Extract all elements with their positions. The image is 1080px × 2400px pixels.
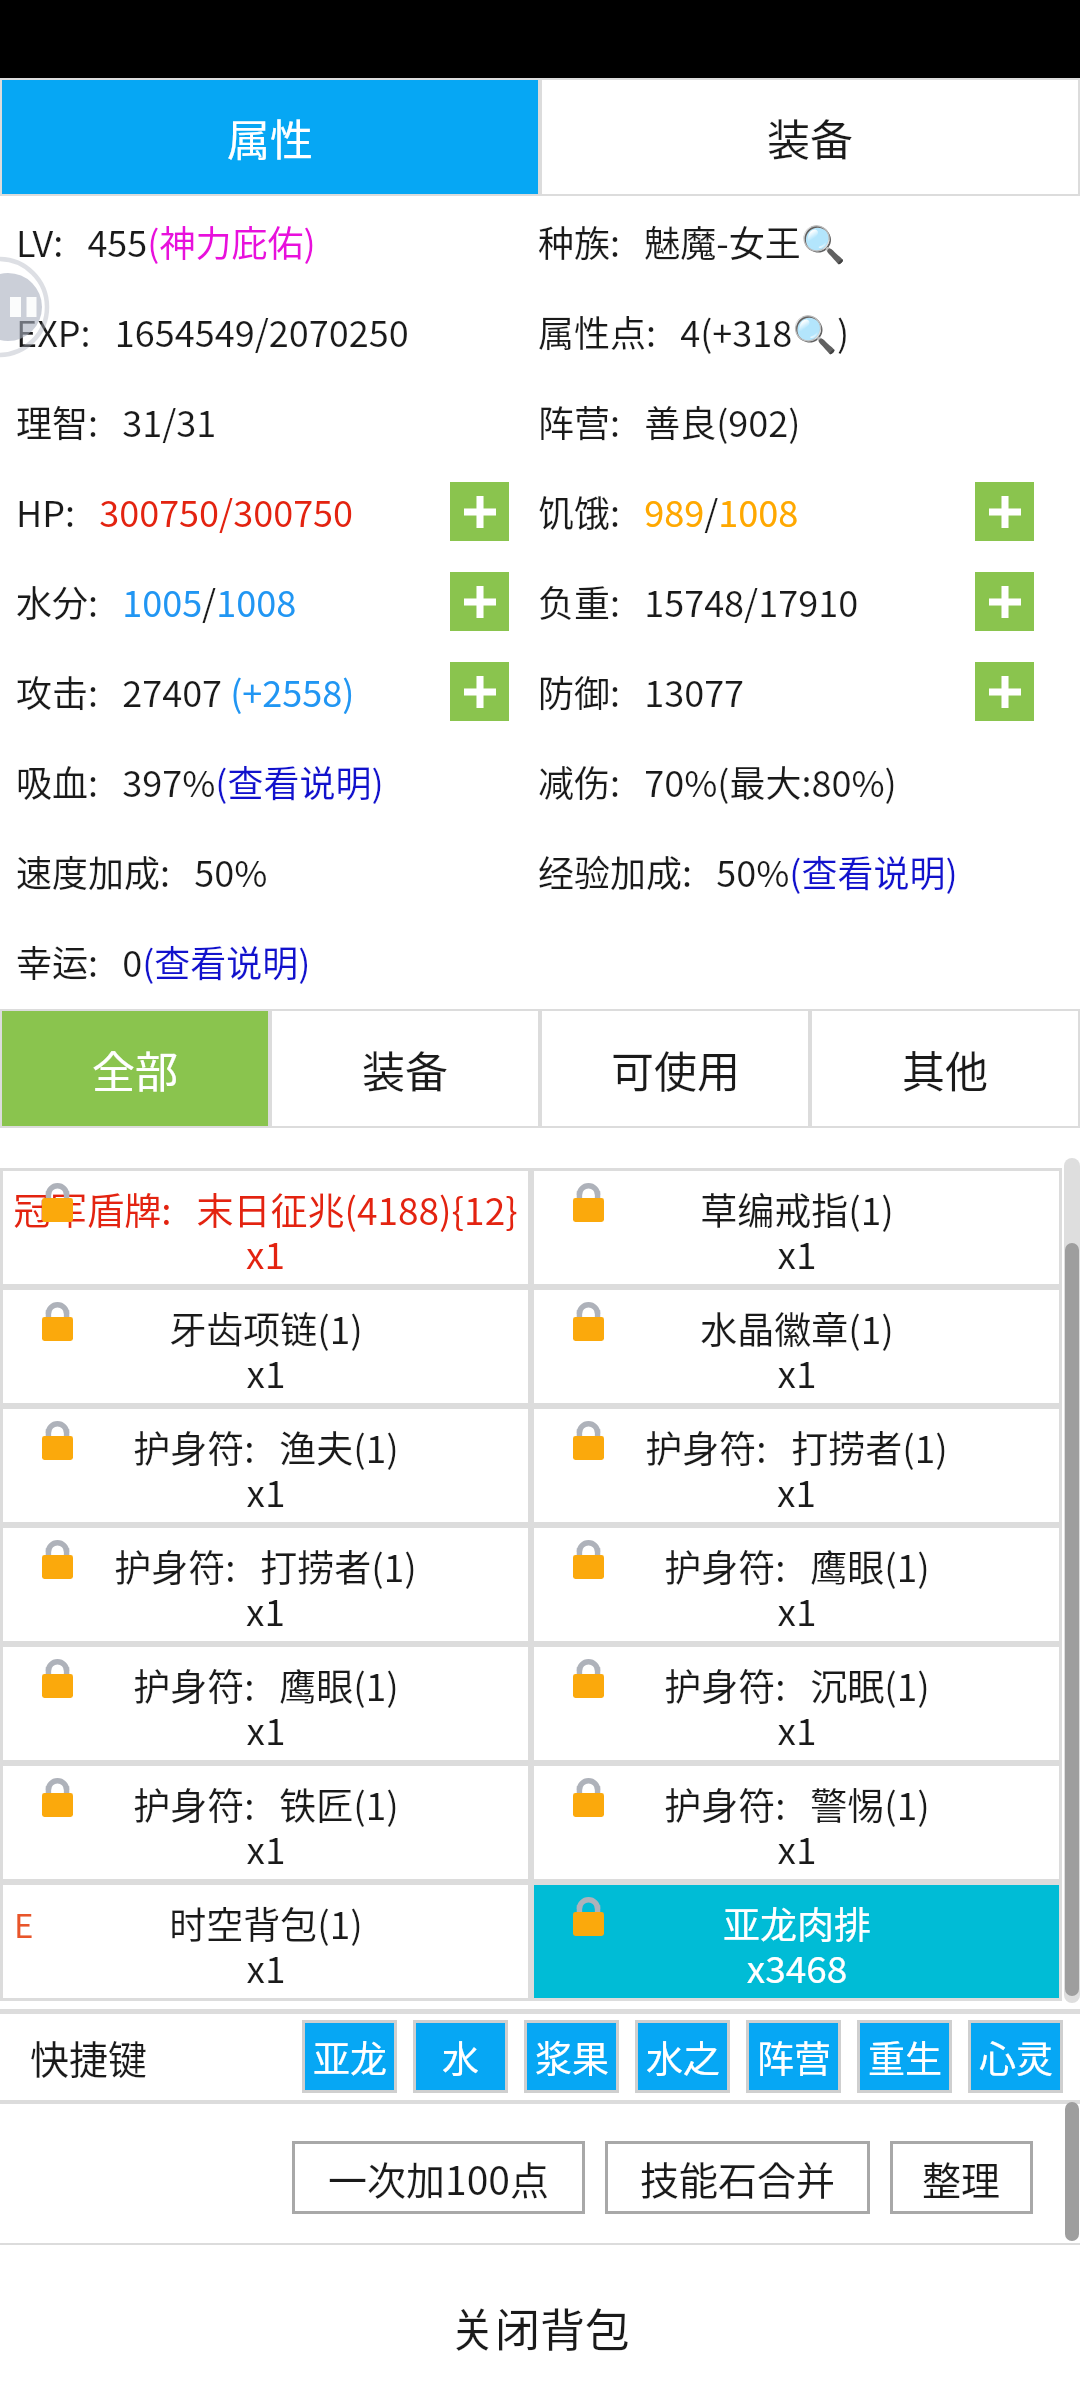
button[interactable]: 可使用	[540, 1009, 810, 1128]
staticText: 整理	[922, 2150, 1001, 2206]
staticText: 技能石合并	[640, 2150, 836, 2206]
staticText: 幸运: 0(查看说明)	[16, 935, 311, 987]
button[interactable]: 全部	[2, 1011, 268, 1126]
staticText: 全部	[92, 1038, 178, 1100]
staticText: 亚龙肉排 x3468	[723, 1896, 871, 1994]
button[interactable]: 水	[415, 2022, 506, 2091]
button[interactable]: 重生	[859, 2022, 950, 2091]
button[interactable]: 护身符: 打捞者(1) x1	[0, 1525, 531, 1644]
staticText: 水之	[646, 2030, 720, 2084]
staticText: 阵营	[757, 2030, 831, 2084]
button[interactable]: 装备	[270, 1009, 540, 1128]
button[interactable]: 浆果	[526, 2022, 617, 2091]
staticText: 护身符: 打捞者(1) x1	[645, 1420, 948, 1518]
staticText: 护身符: 鹰眼(1) x1	[664, 1539, 930, 1637]
staticText: 防御: 13077	[538, 665, 745, 717]
button[interactable]: Increase	[975, 662, 1034, 721]
staticText: 护身符: 打捞者(1) x1	[114, 1539, 417, 1637]
button[interactable]: Pause	[0, 257, 49, 357]
staticText: 护身符: 沉眠(1) x1	[664, 1658, 930, 1756]
button[interactable]: 护身符: 渔夫(1) x1	[0, 1406, 531, 1525]
staticText: 重生	[868, 2030, 942, 2084]
staticText: 属性	[227, 106, 313, 168]
button[interactable]: 关闭背包	[0, 2245, 1080, 2400]
button[interactable]: 整理	[890, 2141, 1033, 2214]
button[interactable]: 护身符: 鹰眼(1) x1	[0, 1644, 531, 1763]
button[interactable]: 水晶徽章(1) x1	[531, 1287, 1062, 1406]
staticText: 水	[442, 2030, 479, 2084]
staticText: 浆果	[535, 2030, 609, 2084]
staticText: 亚龙	[313, 2030, 387, 2084]
button[interactable]: Increase	[450, 662, 509, 721]
staticText: 牙齿项链(1) x1	[169, 1301, 363, 1399]
staticText: 护身符: 警惕(1) x1	[664, 1777, 930, 1875]
staticText: 时空背包(1) x1	[169, 1896, 363, 1994]
staticText: 攻击: 27407 (+2558)	[16, 665, 355, 717]
staticText: 装备	[362, 1038, 448, 1100]
staticText: 减伤: 70%(最大:80%)	[538, 755, 897, 807]
staticText: EXP: 1654549/2070250	[16, 305, 409, 357]
button[interactable]: 一次加100点	[292, 2141, 585, 2214]
button[interactable]: 技能石合并	[605, 2141, 870, 2214]
staticText: 种族: 魅魔-女王🔍	[538, 215, 846, 267]
button[interactable]: 心灵	[970, 2022, 1061, 2091]
button[interactable]: Increase	[450, 572, 509, 631]
staticText: 心灵	[979, 2030, 1053, 2084]
button[interactable]: Increase	[450, 482, 509, 541]
staticText: 理智: 31/31	[16, 395, 217, 447]
staticText: 饥饿: 989/1008	[538, 485, 799, 537]
staticText: 装备	[767, 106, 853, 168]
button[interactable]: 护身符: 警惕(1) x1	[531, 1763, 1062, 1882]
button[interactable]: 草编戒指(1) x1	[531, 1168, 1062, 1287]
button[interactable]: Increase	[975, 482, 1034, 541]
staticText: 一次加100点	[328, 2150, 549, 2206]
button[interactable]: 属性	[2, 80, 538, 194]
staticText: 草编戒指(1) x1	[700, 1182, 894, 1280]
button[interactable]: Increase	[975, 572, 1034, 631]
staticText: 护身符: 鹰眼(1) x1	[133, 1658, 399, 1756]
staticText: LV: 455(神力庇佑)	[16, 215, 316, 267]
button[interactable]: 时空背包(1) x1	[0, 1882, 531, 2001]
staticText: 经验加成: 50%(查看说明)	[538, 845, 958, 897]
staticText: 可使用	[611, 1038, 740, 1100]
staticText: 快捷键	[30, 2029, 148, 2085]
button[interactable]: 阵营	[748, 2022, 839, 2091]
staticText: 属性点: 4(+318🔍)	[538, 305, 850, 357]
staticText: 水分: 1005/1008	[16, 575, 297, 627]
button[interactable]: 水之	[637, 2022, 728, 2091]
button[interactable]: 护身符: 鹰眼(1) x1	[531, 1525, 1062, 1644]
staticText: 负重: 15748/17910	[538, 575, 859, 627]
button[interactable]: 牙齿项链(1) x1	[0, 1287, 531, 1406]
staticText: 护身符: 铁匠(1) x1	[133, 1777, 399, 1875]
button[interactable]: 亚龙	[304, 2022, 395, 2091]
staticText: 其他	[902, 1038, 988, 1100]
button[interactable]: 亚龙肉排 x3468	[531, 1882, 1062, 2001]
button[interactable]: 冠军盾牌: 末日征兆(4188){12} x1	[0, 1168, 531, 1287]
button[interactable]: 护身符: 铁匠(1) x1	[0, 1763, 531, 1882]
staticText: 速度加成: 50%	[16, 845, 268, 897]
staticText: 阵营: 善良(902)	[538, 395, 801, 447]
button[interactable]: 其他	[810, 1009, 1080, 1128]
button[interactable]: 装备	[540, 78, 1080, 196]
staticText: 护身符: 渔夫(1) x1	[133, 1420, 399, 1518]
staticText: E	[14, 1900, 34, 1948]
staticText: 水晶徽章(1) x1	[700, 1301, 894, 1399]
button[interactable]: 护身符: 沉眠(1) x1	[531, 1644, 1062, 1763]
staticText: 关闭背包	[450, 2295, 631, 2360]
staticText: 吸血: 397%(查看说明)	[16, 755, 384, 807]
button[interactable]: 护身符: 打捞者(1) x1	[531, 1406, 1062, 1525]
staticText: HP: 300750/300750	[16, 485, 354, 537]
staticText: 冠军盾牌: 末日征兆(4188){12} x1	[13, 1182, 518, 1280]
